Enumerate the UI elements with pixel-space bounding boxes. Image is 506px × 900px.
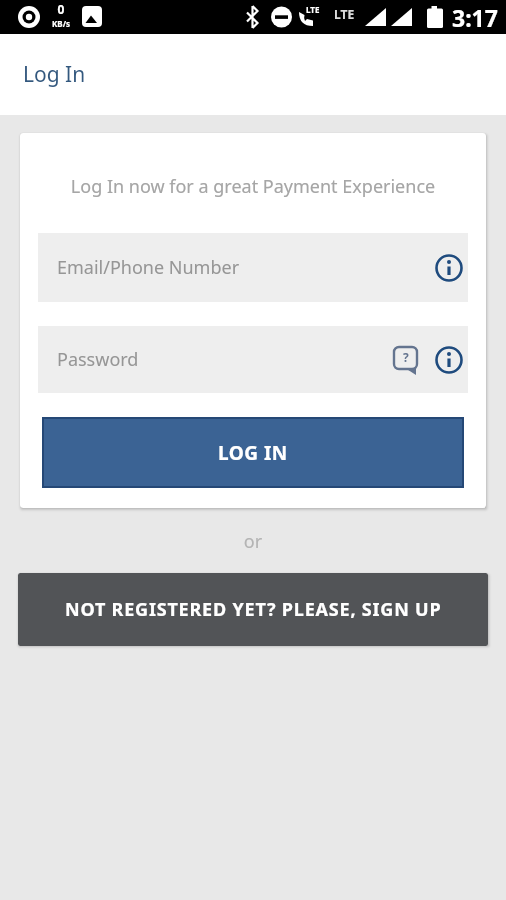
staticText: Email/Phone Number [57, 255, 435, 280]
button[interactable]: Email/Phone Number [38, 233, 468, 302]
staticText: Log In now for a great Payment Experienc… [20, 174, 486, 199]
staticText: ? [403, 349, 409, 365]
button[interactable]: Password [38, 326, 468, 393]
staticText: LOG IN [218, 440, 288, 466]
staticText: LTE [306, 4, 320, 15]
staticText: Password [57, 347, 393, 372]
staticText: KB/s [46, 18, 76, 29]
button[interactable]: NOT REGISTERED YET? PLEASE, SIGN UP [18, 573, 488, 646]
button[interactable]: LOG IN [44, 419, 462, 486]
staticText: NOT REGISTERED YET? PLEASE, SIGN UP [65, 597, 442, 622]
staticText: LTE [334, 6, 355, 22]
staticText: 3:17 [452, 2, 498, 33]
staticText: Log In [23, 60, 86, 89]
staticText: or [0, 529, 506, 554]
staticText: 0 [52, 1, 70, 17]
